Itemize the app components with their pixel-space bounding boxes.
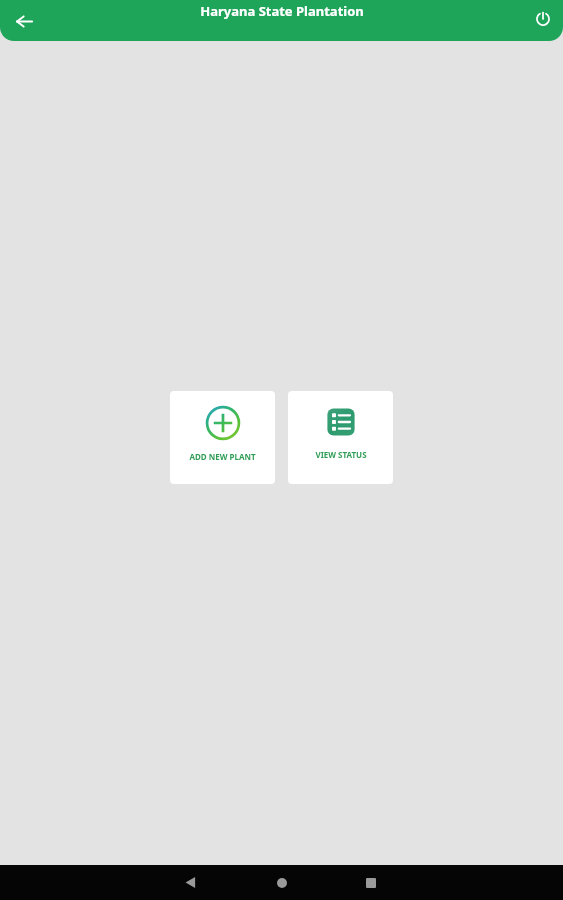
- button[interactable]: VIEW STATUS: [288, 391, 393, 484]
- staticText: Haryana State Plantation: [200, 2, 364, 20]
- staticText: VIEW STATUS: [315, 449, 367, 460]
- button[interactable]: ADD NEW PLANT: [170, 391, 275, 484]
- button[interactable]: Power / Logout: [525, 3, 561, 39]
- staticText: ADD NEW PLANT: [189, 451, 256, 462]
- button[interactable]: Recent apps: [353, 865, 389, 900]
- button[interactable]: Back: [172, 865, 208, 900]
- button[interactable]: Back: [6, 3, 42, 39]
- button[interactable]: Home: [264, 865, 300, 900]
